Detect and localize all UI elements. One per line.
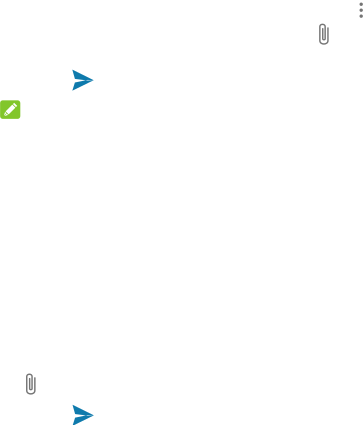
button[interactable]: More options <box>359 2 363 18</box>
button[interactable]: Send <box>72 405 94 425</box>
button[interactable]: Compose <box>0 100 20 119</box>
button[interactable]: Attach file <box>319 22 329 45</box>
button[interactable]: Send <box>72 70 94 91</box>
button[interactable]: Attach file <box>26 372 35 395</box>
